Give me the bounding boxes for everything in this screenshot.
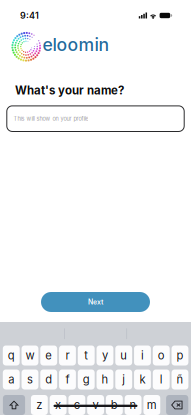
button[interactable]: g	[78, 369, 95, 389]
button[interactable]: d	[40, 369, 57, 389]
staticText: r	[65, 349, 69, 362]
button[interactable]: n	[125, 395, 142, 415]
button[interactable]: j	[115, 369, 132, 389]
button[interactable]: o	[153, 345, 170, 365]
staticText: h	[101, 373, 108, 386]
staticText: b	[111, 398, 118, 412]
button[interactable]: Delete	[166, 395, 188, 415]
button[interactable]: q	[3, 345, 20, 365]
button[interactable]: c	[68, 395, 85, 415]
button[interactable]: y	[96, 345, 113, 365]
staticText: n	[130, 398, 137, 412]
button[interactable]: ñ	[172, 369, 188, 389]
staticText: m	[147, 398, 157, 412]
button[interactable]: i	[134, 345, 151, 365]
staticText: u	[120, 349, 127, 362]
staticText: What's your name?	[15, 83, 124, 97]
button[interactable]: k	[134, 369, 151, 389]
staticText: z	[36, 398, 42, 412]
button[interactable]: Shift	[3, 395, 25, 415]
staticText: j	[122, 373, 125, 386]
staticText: i	[141, 349, 144, 362]
staticText: e	[45, 349, 52, 362]
button[interactable]: l	[153, 369, 170, 389]
button[interactable]: This will show on your profile	[7, 106, 184, 131]
staticText: s	[27, 373, 33, 386]
button[interactable]: z	[31, 395, 48, 415]
staticText: This will show on your profile	[13, 115, 88, 122]
staticText: a	[8, 373, 14, 386]
staticText: q	[8, 349, 15, 362]
button[interactable]: f	[59, 369, 76, 389]
button[interactable]: m	[143, 395, 160, 415]
staticText: y	[102, 349, 108, 362]
button[interactable]: Next	[41, 292, 150, 312]
staticText: f	[65, 373, 69, 386]
staticText: c	[74, 398, 80, 412]
button[interactable]: p	[172, 345, 188, 365]
button[interactable]: b	[106, 395, 123, 415]
staticText: v	[93, 398, 99, 412]
button[interactable]: r	[59, 345, 76, 365]
button[interactable]: w	[22, 345, 38, 365]
staticText: p	[176, 349, 183, 362]
staticText: g	[83, 373, 90, 386]
staticText: k	[139, 373, 145, 386]
staticText: Next	[88, 298, 103, 306]
staticText: o	[158, 349, 165, 362]
button[interactable]: s	[22, 369, 38, 389]
staticText: 9:41	[20, 10, 39, 21]
staticText: w	[25, 349, 34, 362]
staticText: l	[160, 373, 163, 386]
staticText: ñ	[176, 373, 183, 386]
staticText: eloomin	[42, 34, 109, 55]
staticText: t	[84, 349, 88, 362]
button[interactable]: x	[50, 395, 67, 415]
staticText: d	[45, 373, 52, 386]
button[interactable]: e	[40, 345, 57, 365]
button[interactable]: t	[78, 345, 95, 365]
button[interactable]: a	[3, 369, 20, 389]
button[interactable]: h	[96, 369, 113, 389]
button[interactable]: u	[115, 345, 132, 365]
staticText: x	[55, 398, 61, 412]
button[interactable]: v	[87, 395, 104, 415]
